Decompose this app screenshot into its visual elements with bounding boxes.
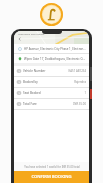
staticText: Total Fare	[23, 102, 73, 106]
staticText: Seat Booked	[23, 91, 84, 95]
staticText: CONFIRM BOOKING	[31, 174, 72, 180]
staticText: Vijeshwara Devi Temple	[18, 32, 45, 35]
button[interactable]: HP Avenue, Electronic City Phase 1, Elec…	[14, 44, 89, 53]
button[interactable]: Wipro Gate 17, Doddathoguru, Electronic …	[14, 54, 89, 63]
staticText: KA51 AB1234	[68, 69, 86, 73]
staticText: 1	[84, 91, 86, 95]
button[interactable]: Seat Booked	[14, 88, 89, 98]
staticText: You have selected 1 seat(s) for INR 35.0…	[24, 165, 80, 169]
staticText: Vehicle Number	[23, 69, 68, 73]
button[interactable]: CONFIRM BOOKING	[14, 171, 89, 183]
staticText: HP Avenue, Electronic City Phase 1, Elec…	[24, 47, 86, 51]
button[interactable]: Booked by	[14, 77, 89, 87]
staticText: Wipro Gate 17, Doddathoguru, Electronic …	[24, 57, 86, 61]
staticText: Booked by	[23, 80, 74, 84]
button[interactable]: Back	[16, 35, 23, 42]
button[interactable]: Vehicle Number	[14, 66, 89, 76]
button[interactable]: Total Fare	[14, 99, 89, 109]
button[interactable]: App logo	[40, 3, 63, 26]
staticText: Rajendra	[74, 80, 86, 84]
staticText: INR 35.00	[73, 102, 86, 106]
